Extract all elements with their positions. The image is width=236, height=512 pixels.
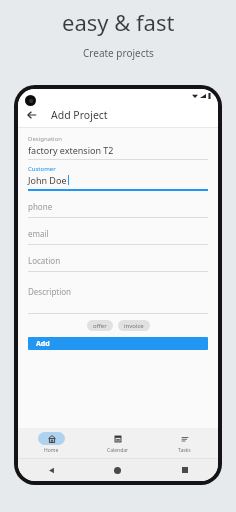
staticText: Add (36, 339, 50, 349)
staticText: Home (44, 447, 59, 454)
staticText: Create projects (83, 46, 154, 60)
staticText: invoice (124, 322, 144, 330)
staticText: Calendar (107, 447, 129, 454)
button[interactable]: Back (23, 106, 41, 124)
button[interactable]: Location (28, 250, 208, 272)
button[interactable]: offer (87, 320, 113, 331)
staticText: Description (28, 286, 72, 297)
button[interactable]: phone (28, 196, 208, 218)
staticText: Tasks (178, 447, 191, 454)
button[interactable]: Designation (28, 135, 208, 160)
button[interactable]: email (28, 223, 208, 245)
staticText: Add Project (51, 108, 108, 122)
staticText: John Doe (28, 174, 67, 186)
staticText: offer (93, 322, 107, 330)
button[interactable]: Home (18, 428, 84, 458)
staticText: Location (28, 255, 61, 266)
button[interactable]: Home (84, 459, 151, 481)
staticText: Designation (28, 135, 63, 143)
button[interactable]: Customer (28, 165, 208, 191)
staticText: easy & fast (62, 7, 175, 37)
button[interactable]: invoice (118, 320, 150, 331)
button[interactable]: Tasks (151, 428, 218, 458)
button[interactable]: Calendar (84, 428, 151, 458)
button[interactable]: Recent apps (151, 459, 218, 481)
staticText: email (28, 228, 49, 239)
button[interactable]: Back (18, 459, 84, 481)
staticText: Customer (28, 165, 56, 173)
button[interactable]: Add (28, 337, 208, 350)
button[interactable]: Description (28, 286, 208, 313)
staticText: factory extension T2 (28, 144, 114, 156)
staticText: phone (28, 201, 53, 212)
